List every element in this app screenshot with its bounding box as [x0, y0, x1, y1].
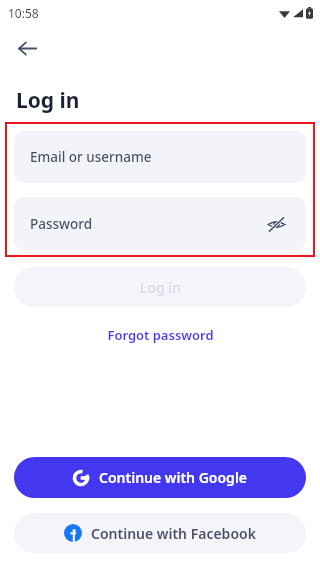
staticText: Log in [140, 278, 181, 297]
staticText: Continue with Facebook [91, 524, 256, 543]
button[interactable]: Continue with Facebook [14, 513, 306, 553]
button[interactable]: Show password [262, 210, 290, 238]
button[interactable]: Log in [14, 267, 306, 307]
button[interactable]: Password [14, 197, 306, 250]
button[interactable]: Forgot password [99, 322, 222, 348]
staticText: Email or username [30, 148, 152, 166]
staticText: Password [30, 215, 93, 233]
staticText: 10:58 [8, 5, 39, 21]
staticText: Log in [16, 86, 80, 115]
button[interactable]: Back [10, 31, 44, 65]
staticText: Forgot password [107, 326, 214, 344]
staticText: Continue with Google [99, 468, 248, 487]
button[interactable]: Continue with Google [14, 457, 306, 498]
button[interactable]: Email or username [14, 131, 306, 183]
